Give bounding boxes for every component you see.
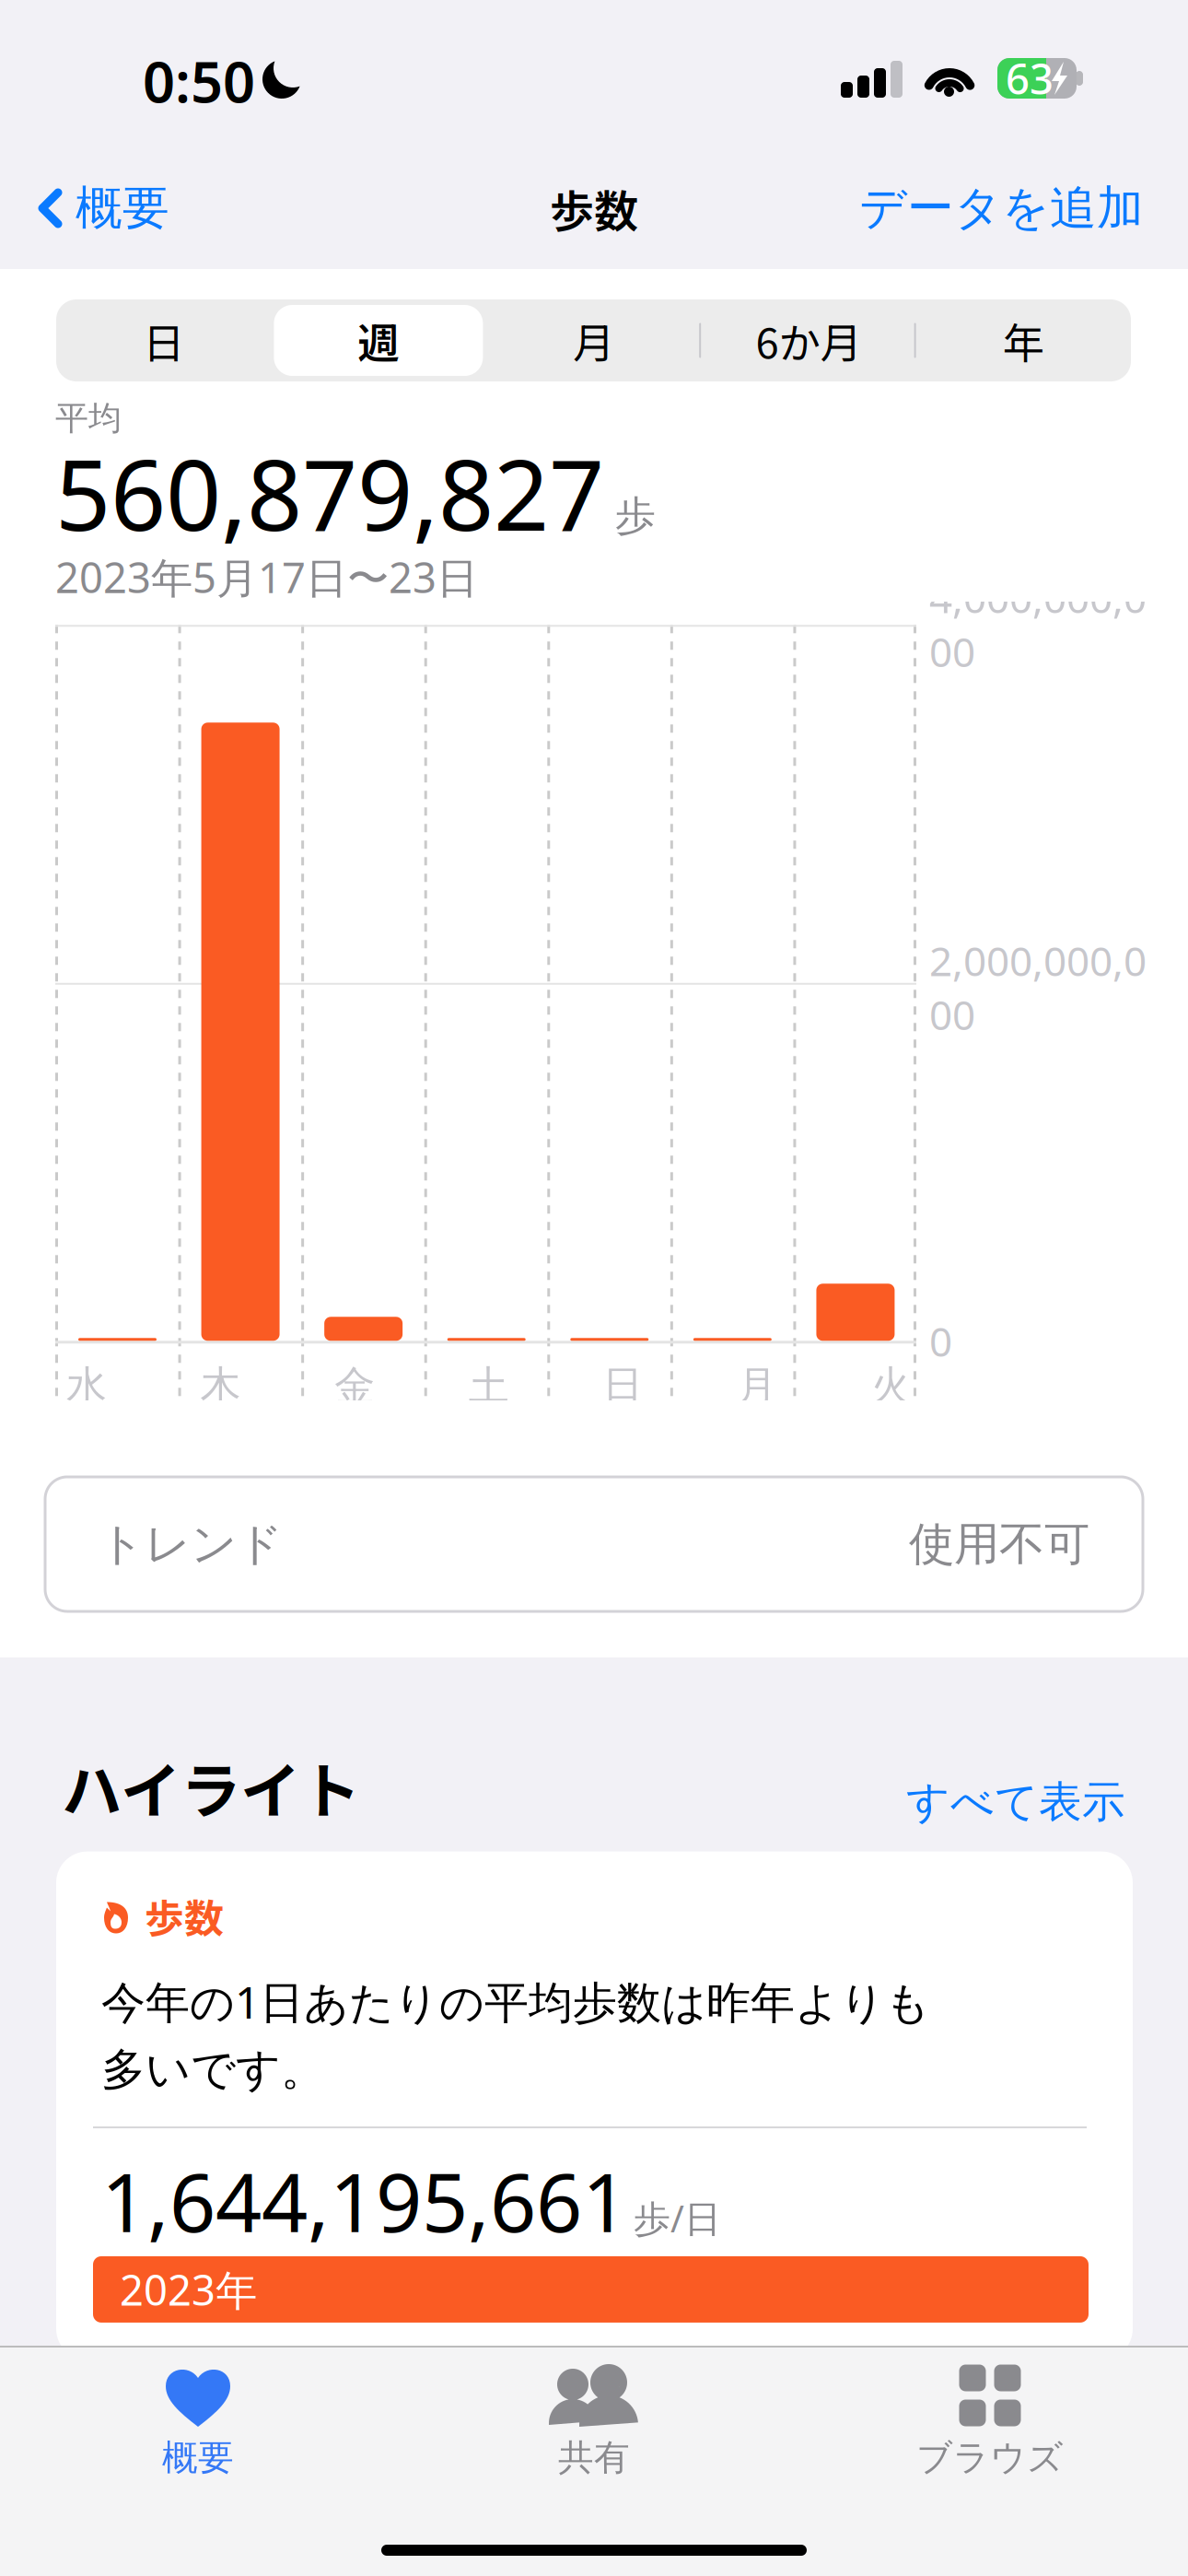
staticText: 月 — [737, 1361, 777, 1411]
button[interactable]: 共有 — [396, 2348, 792, 2491]
button[interactable]: 概要 — [0, 161, 169, 255]
staticText: 多いです。 — [101, 2043, 325, 2097]
button[interactable]: 6か月 — [701, 299, 916, 381]
button[interactable]: 週 — [271, 299, 486, 381]
staticText: 6か月 — [756, 310, 861, 371]
button[interactable]: 歩数 — [56, 1851, 1133, 2360]
staticText: 0 — [929, 1314, 952, 1368]
staticText: 1,644,195,661 — [101, 2147, 628, 2254]
staticText: 共有 — [558, 2436, 630, 2480]
button[interactable]: すべて表示 — [906, 1776, 1188, 1830]
staticText: 使用不可 — [909, 1516, 1089, 1572]
staticText: すべて表示 — [906, 1776, 1125, 1828]
staticText: 木 — [200, 1361, 241, 1411]
staticText: 2023年5月17日〜23日 — [55, 549, 478, 605]
staticText: 概要 — [76, 180, 169, 237]
staticText: 2,000,000,000 — [929, 934, 1147, 1041]
staticText: 今年の1日あたりの平均歩数は昨年よりも — [101, 1972, 930, 2031]
staticText: 月 — [573, 310, 614, 371]
staticText: 歩数 — [145, 1887, 224, 1944]
button[interactable]: データを追加 — [859, 161, 1188, 255]
staticText: 概要 — [162, 2436, 234, 2480]
staticText: 歩数 — [550, 176, 638, 240]
staticText: 0:50 — [143, 43, 255, 118]
button[interactable]: 月 — [486, 299, 701, 381]
button[interactable]: ブラウズ — [792, 2348, 1188, 2491]
staticText: 金 — [334, 1361, 375, 1411]
staticText: 火 — [871, 1361, 911, 1411]
staticText: 週 — [358, 310, 399, 371]
staticText: ブラウズ — [916, 2436, 1064, 2480]
staticText: 土 — [468, 1361, 509, 1411]
staticText: 63 — [1006, 51, 1054, 106]
staticText: 歩 — [615, 491, 656, 541]
staticText: 歩/日 — [634, 2193, 721, 2242]
staticText: 平均 — [55, 398, 122, 439]
staticText: データを追加 — [859, 180, 1144, 237]
staticText: 4,000,000,000 — [929, 571, 1147, 678]
button[interactable]: 概要 — [0, 2348, 396, 2491]
staticText: 水 — [66, 1361, 107, 1411]
staticText: ハイライト — [62, 1743, 360, 1830]
button[interactable]: 年 — [916, 299, 1131, 381]
staticText: 年 — [1003, 310, 1044, 371]
staticText: トレンド — [99, 1516, 283, 1572]
staticText: 日 — [603, 1361, 643, 1411]
staticText: 560,879,827 — [55, 429, 604, 557]
button[interactable]: 日 — [56, 299, 271, 381]
staticText: 日 — [143, 310, 184, 371]
staticText: 2023年 — [120, 2262, 257, 2317]
